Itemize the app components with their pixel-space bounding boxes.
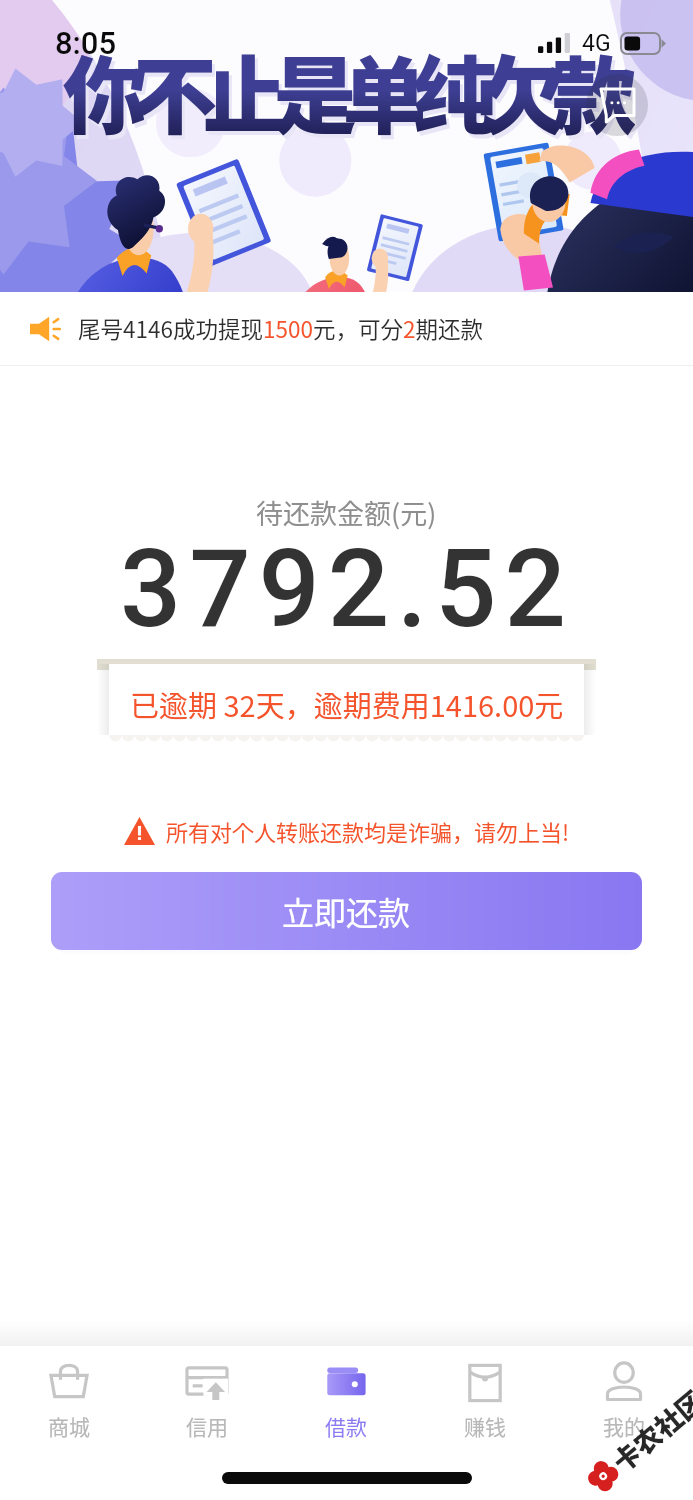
staticText: 借款	[325, 1411, 367, 1441]
staticText: 赚钱	[464, 1411, 506, 1441]
button[interactable]: 商城	[0, 1346, 138, 1450]
staticText: 尾号4146成功提现1500元，可分2期还款	[78, 312, 483, 345]
button[interactable]: 赚钱	[415, 1346, 554, 1450]
button[interactable]: 立即还款	[51, 872, 642, 950]
staticText: 待还款金额(元)	[256, 493, 437, 532]
staticText: 立即还款	[282, 888, 411, 934]
staticText: 商城	[48, 1411, 90, 1441]
staticText: 8:05	[55, 25, 117, 61]
button[interactable]: Customer service chat	[586, 74, 648, 136]
staticText: 你不止是单纯欠款	[66, 34, 626, 156]
button[interactable]: 尾号4146成功提现1500元，可分2期还款	[30, 292, 693, 365]
button[interactable]: 我的	[554, 1346, 693, 1450]
button[interactable]: 借款	[276, 1346, 415, 1450]
staticText: 信用	[186, 1411, 228, 1441]
staticText: 我的	[603, 1411, 645, 1441]
staticText: 3792.52	[120, 526, 574, 653]
staticText: 所有对个人转账还款均是诈骗，请勿上当!	[166, 815, 570, 847]
staticText: 4G	[582, 30, 611, 57]
staticText: 你不止是单纯欠款	[63, 30, 623, 152]
staticText: 卡农社区	[603, 1381, 693, 1480]
button[interactable]: 信用	[138, 1346, 276, 1450]
staticText: 已逾期 32天，逾期费用1416.00元	[130, 683, 564, 725]
